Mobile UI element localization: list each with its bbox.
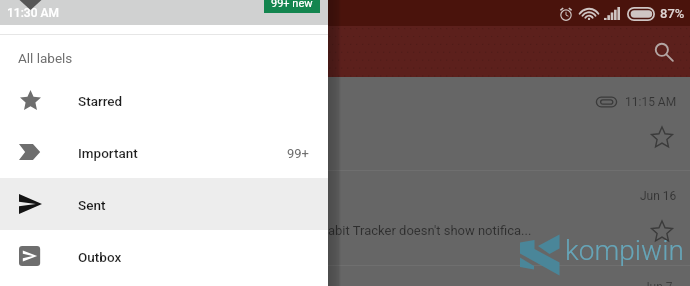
- staticText: 11:30 AM: [7, 6, 59, 20]
- staticText: 11:15 AM: [625, 95, 677, 109]
- staticText: Jun 16: [640, 189, 677, 203]
- button[interactable]: Outbox: [0, 230, 328, 282]
- staticText: Jun 7: [643, 280, 673, 286]
- button[interactable]: Important: [0, 126, 328, 178]
- staticText: Important: [78, 145, 138, 161]
- staticText: All labels: [18, 50, 73, 66]
- button[interactable]: Sent: [0, 178, 328, 230]
- staticText: kompiwin: [565, 234, 684, 267]
- button[interactable]: Starred: [0, 74, 328, 126]
- button[interactable]: Search: [646, 34, 682, 70]
- button[interactable]: 99+ new: [264, 0, 320, 13]
- staticText: Outbox: [78, 249, 122, 265]
- staticText: abit Tracker doesn't show notifica...: [328, 223, 532, 238]
- staticText: 87%: [660, 6, 685, 21]
- staticText: 99+: [287, 146, 309, 161]
- button[interactable]: Jun 16: [0, 171, 690, 266]
- staticText: Sent: [78, 197, 106, 213]
- staticText: 99+ new: [271, 0, 313, 10]
- staticText: Starred: [78, 93, 123, 109]
- button[interactable]: 11:15 AM: [0, 77, 690, 171]
